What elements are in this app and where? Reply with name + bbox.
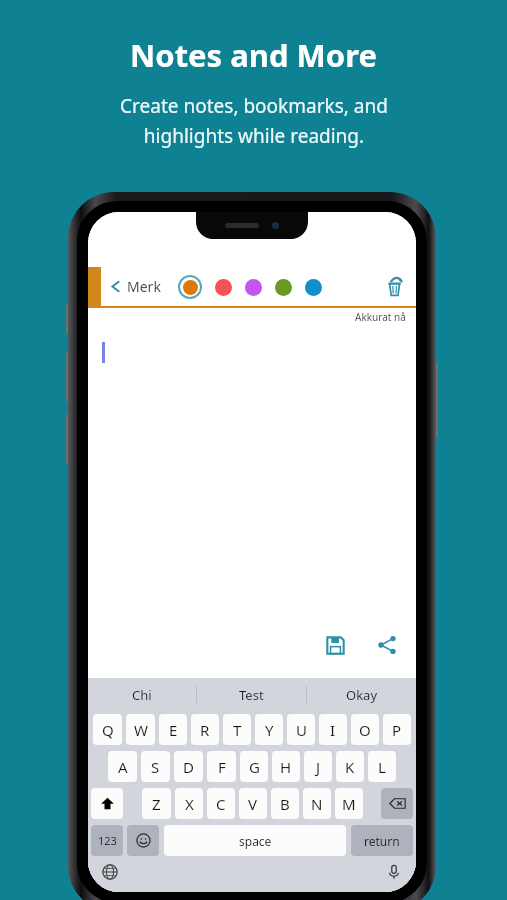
button[interactable]: W — [126, 714, 155, 745]
staticText: E — [169, 720, 178, 740]
button[interactable]: Backspace — [381, 788, 413, 819]
staticText: F — [218, 757, 226, 777]
staticText: Notes and More — [130, 34, 377, 76]
button[interactable]: X — [175, 788, 203, 819]
staticText: Y — [265, 720, 274, 740]
button[interactable]: R — [191, 714, 219, 745]
button[interactable]: Share — [374, 632, 400, 658]
staticText: 123 — [98, 833, 117, 848]
button[interactable]: E — [159, 714, 187, 745]
button[interactable]: Okay — [307, 678, 416, 711]
staticText: return — [364, 833, 400, 849]
staticText: O — [359, 720, 371, 740]
staticText: I — [330, 720, 336, 740]
button[interactable]: T — [223, 714, 251, 745]
button[interactable]: O — [351, 714, 379, 745]
button[interactable]: Dictation — [382, 860, 406, 884]
button[interactable]: V — [239, 788, 267, 819]
button[interactable]: Q — [93, 714, 122, 745]
button[interactable]: C — [207, 788, 235, 819]
button[interactable]: H — [272, 751, 300, 782]
button[interactable]: S — [141, 751, 170, 782]
staticText: U — [296, 720, 307, 740]
staticText: W — [134, 720, 148, 740]
button[interactable]: F — [207, 751, 236, 782]
staticText: Okay — [346, 686, 378, 704]
button[interactable]: A — [108, 751, 137, 782]
button[interactable]: M — [335, 788, 363, 819]
staticText: Merk — [127, 277, 161, 296]
staticText: K — [345, 757, 355, 777]
staticText: L — [378, 757, 386, 777]
staticText: C — [216, 794, 226, 814]
button[interactable]: Z — [142, 788, 171, 819]
staticText: H — [280, 757, 292, 777]
button[interactable]: Highlight colour — [178, 275, 202, 299]
staticText: space — [239, 833, 272, 849]
staticText: Q — [102, 720, 114, 740]
button[interactable]: Shift — [91, 788, 123, 819]
staticText: G — [249, 757, 260, 777]
staticText: Test — [239, 686, 264, 704]
button[interactable]: Save — [322, 632, 348, 658]
button[interactable]: Y — [255, 714, 283, 745]
staticText: X — [185, 794, 194, 814]
button[interactable]: K — [336, 751, 364, 782]
staticText: Z — [152, 794, 161, 814]
staticText: A — [118, 757, 128, 777]
staticText: B — [280, 794, 290, 814]
button[interactable]: Highlight colour — [304, 278, 322, 296]
button[interactable]: D — [174, 751, 203, 782]
button[interactable]: Chi — [88, 678, 196, 711]
button[interactable]: space — [164, 825, 346, 856]
button[interactable]: return — [351, 825, 413, 856]
staticText: R — [200, 720, 210, 740]
button[interactable]: Highlight colour — [214, 278, 232, 296]
button[interactable]: Highlight colour — [244, 278, 262, 296]
staticText: D — [183, 757, 194, 777]
button[interactable]: Emoji — [127, 825, 159, 856]
button[interactable]: G — [240, 751, 268, 782]
button[interactable]: Test — [197, 678, 306, 711]
button[interactable]: Delete note — [380, 273, 408, 301]
button[interactable]: J — [304, 751, 332, 782]
staticText: V — [248, 794, 258, 814]
button[interactable]: U — [287, 714, 315, 745]
button[interactable]: L — [368, 751, 396, 782]
button[interactable]: P — [383, 714, 411, 745]
staticText: P — [392, 720, 402, 740]
staticText: Akkurat nå — [355, 310, 406, 324]
button[interactable]: Highlight colour — [274, 278, 292, 296]
staticText: M — [342, 794, 356, 814]
button[interactable]: B — [271, 788, 299, 819]
staticText: J — [316, 757, 321, 777]
button[interactable]: Change keyboard — [98, 860, 122, 884]
button[interactable]: N — [303, 788, 331, 819]
button[interactable]: 123 — [91, 825, 123, 856]
button[interactable]: I — [319, 714, 347, 745]
staticText: Chi — [132, 686, 152, 704]
staticText: Create notes, bookmarks, and highlights … — [120, 93, 388, 148]
staticText: T — [233, 720, 242, 740]
button[interactable]: Merk — [107, 272, 163, 301]
staticText: N — [311, 794, 323, 814]
staticText: S — [151, 757, 160, 777]
